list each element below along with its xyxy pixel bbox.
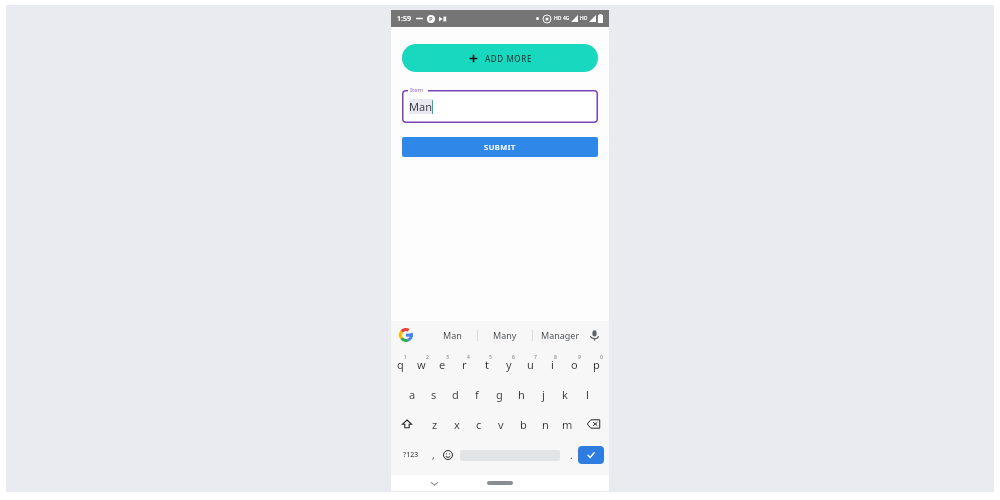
button[interactable]: Enter xyxy=(578,446,604,464)
button[interactable]: . xyxy=(564,439,578,471)
button[interactable]: t xyxy=(477,349,499,379)
staticText: SUBMIT xyxy=(484,142,516,152)
staticText: g xyxy=(496,387,503,402)
staticText: r xyxy=(462,357,467,372)
staticText: p xyxy=(593,357,600,372)
staticText: Man xyxy=(409,99,432,114)
button[interactable]: w xyxy=(412,349,433,379)
staticText: t xyxy=(485,357,489,372)
button[interactable]: k xyxy=(554,379,576,409)
staticText: m xyxy=(562,417,573,432)
button[interactable]: p xyxy=(587,349,609,379)
button[interactable]: a xyxy=(402,379,423,409)
staticText: ?123 xyxy=(403,450,419,460)
button[interactable]: x xyxy=(446,409,468,439)
staticText: v xyxy=(498,417,504,432)
staticText: 4G xyxy=(563,15,570,22)
button[interactable]: y xyxy=(499,349,521,379)
staticText: 4 xyxy=(467,354,470,361)
button[interactable]: Backspace xyxy=(578,409,609,439)
staticText: d xyxy=(452,387,459,402)
staticText: q xyxy=(397,357,404,372)
button[interactable]: Shift xyxy=(391,409,423,439)
staticText: k xyxy=(562,387,568,402)
staticText: 6 xyxy=(512,354,515,361)
button[interactable]: f xyxy=(466,379,488,409)
button[interactable]: Google xyxy=(399,328,413,342)
button[interactable]: ADD MORE xyxy=(402,44,598,72)
button[interactable]: v xyxy=(490,409,512,439)
staticText: P xyxy=(429,15,433,23)
button[interactable]: SUBMIT xyxy=(402,137,598,157)
staticText: 9 xyxy=(578,354,581,361)
button[interactable]: o xyxy=(565,349,587,379)
staticText: n xyxy=(542,417,549,432)
button[interactable]: Voice input xyxy=(588,329,601,342)
button[interactable]: Man xyxy=(427,321,477,349)
button[interactable]: Many xyxy=(478,321,532,349)
staticText: l xyxy=(586,387,589,402)
button[interactable]: n xyxy=(534,409,556,439)
button[interactable]: s xyxy=(423,379,444,409)
staticText: u xyxy=(527,357,534,372)
staticText: 7 xyxy=(534,354,537,361)
button[interactable]: m xyxy=(556,409,578,439)
staticText: ADD MORE xyxy=(485,53,532,64)
staticText: 3 xyxy=(446,354,449,361)
staticText: x xyxy=(454,417,460,432)
button[interactable]: l xyxy=(576,379,598,409)
staticText: b xyxy=(520,417,527,432)
button[interactable]: q xyxy=(391,349,412,379)
staticText: 8 xyxy=(554,354,557,361)
staticText: 5 xyxy=(489,354,492,361)
button[interactable]: z xyxy=(423,409,446,439)
button[interactable]: b xyxy=(512,409,534,439)
staticText: w xyxy=(417,357,426,372)
staticText: 0 xyxy=(600,354,603,361)
staticText: HD xyxy=(580,15,588,22)
staticText: HD xyxy=(554,15,562,22)
staticText: Man xyxy=(443,329,462,341)
staticText: z xyxy=(432,417,438,432)
button[interactable]: Home xyxy=(487,481,513,485)
button[interactable]: d xyxy=(444,379,466,409)
button[interactable]: u xyxy=(521,349,543,379)
button[interactable]: Hide keyboard xyxy=(427,476,441,490)
button[interactable]: i xyxy=(543,349,565,379)
staticText: 2 xyxy=(426,354,429,361)
staticText: y xyxy=(506,357,512,372)
staticText: , xyxy=(432,448,435,462)
staticText: a xyxy=(409,387,416,402)
staticText: o xyxy=(571,357,578,372)
staticText: j xyxy=(542,387,545,402)
button[interactable]: e xyxy=(433,349,455,379)
staticText: . xyxy=(570,448,573,462)
staticText: Many xyxy=(493,329,517,341)
staticText: f xyxy=(475,387,479,402)
staticText: c xyxy=(476,417,482,432)
button[interactable] xyxy=(402,90,598,123)
button[interactable]: g xyxy=(488,379,510,409)
button[interactable]: ?123 xyxy=(396,439,426,471)
button[interactable]: c xyxy=(468,409,490,439)
button[interactable]: Emoji xyxy=(440,439,456,471)
button[interactable]: r xyxy=(455,349,477,379)
staticText: s xyxy=(431,387,437,402)
button[interactable]: , xyxy=(426,439,440,471)
staticText: 1 xyxy=(404,354,407,361)
staticText: h xyxy=(518,387,525,402)
staticText: 1:59 xyxy=(397,14,411,24)
button[interactable]: h xyxy=(510,379,532,409)
button[interactable]: Manager xyxy=(533,321,588,349)
button[interactable]: j xyxy=(532,379,554,409)
staticText: e xyxy=(439,357,446,372)
staticText: i xyxy=(551,357,554,372)
staticText: Item xyxy=(410,86,424,94)
staticText: Manager xyxy=(541,329,580,341)
